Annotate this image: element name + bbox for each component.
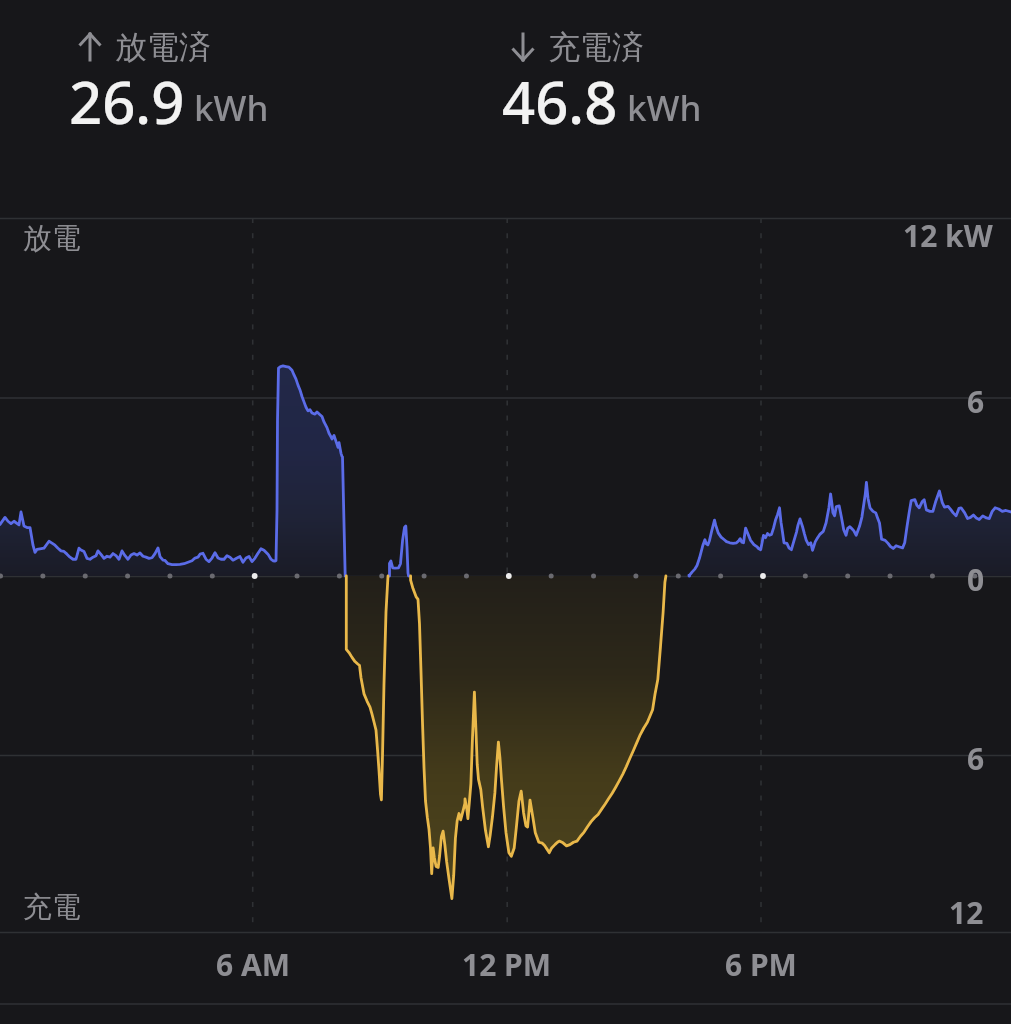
staticText: 放電 (23, 220, 81, 257)
staticText: kWh (627, 84, 702, 132)
staticText: 6 PM (725, 944, 797, 985)
staticText: 6 (967, 738, 985, 779)
other: Discharged (77, 29, 103, 65)
staticText: 充電 (23, 889, 81, 926)
button[interactable]: Charged (502, 21, 702, 141)
button[interactable]: Discharged (69, 21, 269, 141)
button[interactable]: Energy chart (0, 0, 1011, 1024)
staticText: 26.9 (69, 62, 185, 141)
staticText: 6 (967, 381, 985, 422)
staticText: kWh (194, 84, 269, 132)
staticText: 0 (967, 559, 985, 600)
staticText: 46.8 (502, 62, 618, 141)
staticText: 12 (949, 892, 984, 933)
other: Charged (510, 29, 536, 65)
staticText: 6 AM (216, 944, 291, 985)
staticText: 12 kW (903, 215, 993, 256)
staticText: 放電済 (115, 27, 211, 67)
staticText: 充電済 (548, 27, 644, 67)
staticText: 12 PM (462, 944, 552, 985)
